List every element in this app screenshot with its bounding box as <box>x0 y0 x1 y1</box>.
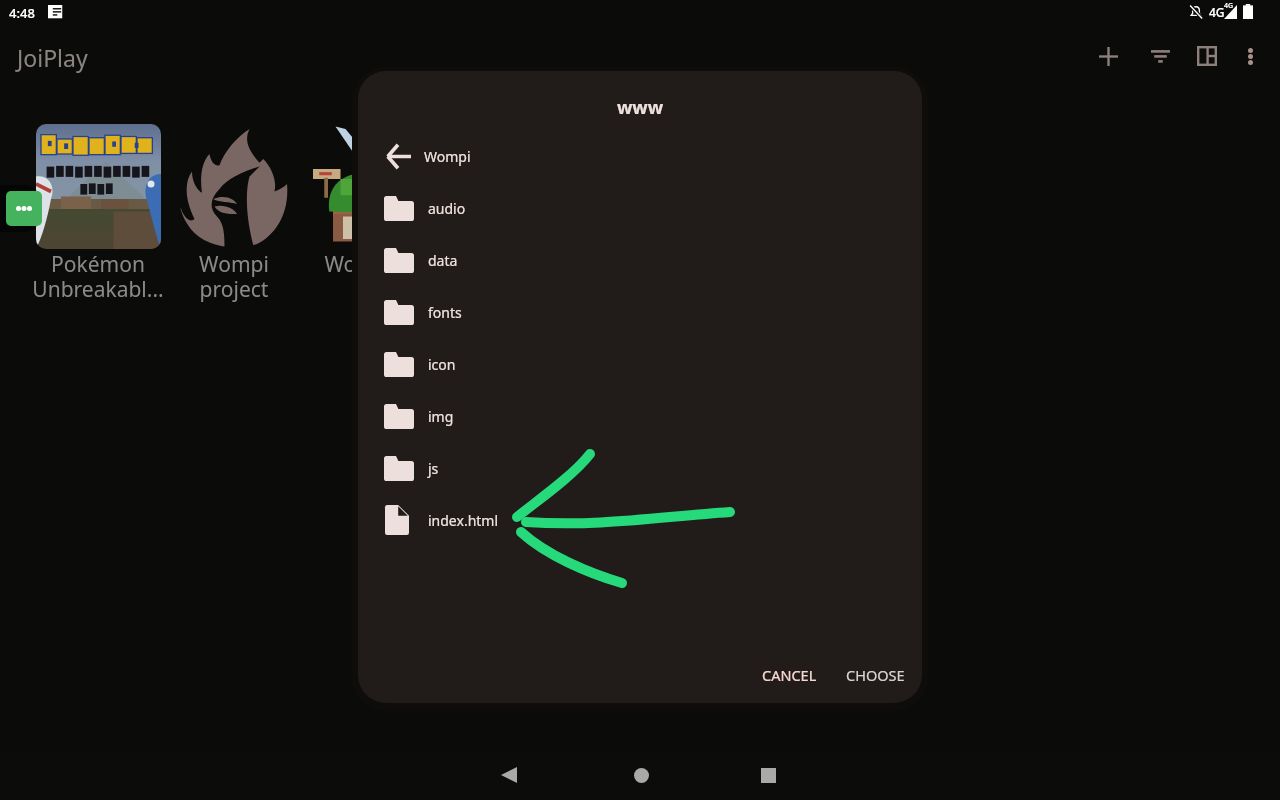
button[interactable]: Wolf RPG <box>298 124 442 279</box>
button[interactable]: More <box>6 191 42 226</box>
staticText: js <box>428 459 439 478</box>
button[interactable]: Pokémon Unbreakabl... <box>26 124 170 303</box>
staticText: 4G <box>1209 4 1225 20</box>
button[interactable]: index.html <box>358 494 922 546</box>
button[interactable]: fonts <box>358 286 922 338</box>
staticText: fonts <box>428 303 462 322</box>
button[interactable]: Home <box>617 751 665 799</box>
button[interactable]: Recent apps <box>744 751 792 799</box>
button[interactable]: data <box>358 234 922 286</box>
staticText: index.html <box>428 511 499 530</box>
button[interactable]: Filter <box>1138 34 1182 78</box>
staticText: Wompi <box>424 147 471 166</box>
button[interactable]: audio <box>358 182 922 234</box>
staticText: JoiPlay <box>17 42 88 73</box>
staticText: 4:48 <box>9 4 35 22</box>
button[interactable]: CHOOSE <box>836 656 915 694</box>
button[interactable]: Add <box>1086 34 1130 78</box>
staticText: icon <box>428 355 456 374</box>
staticText: Wompi project <box>162 250 306 303</box>
button[interactable]: img <box>358 390 922 442</box>
button[interactable]: Layout <box>1185 34 1229 78</box>
button[interactable]: Wompi project <box>162 124 306 303</box>
staticText: img <box>428 407 454 426</box>
staticText: CANCEL <box>762 665 817 685</box>
button[interactable]: Back <box>487 751 535 799</box>
staticText: Wolf RPG <box>298 250 442 279</box>
button[interactable]: More options <box>1228 34 1272 78</box>
button[interactable]: icon <box>358 338 922 390</box>
button[interactable]: Wompi <box>358 130 922 182</box>
staticText: Pokémon Unbreakabl... <box>26 250 170 303</box>
button[interactable]: CANCEL <box>752 656 827 694</box>
staticText: www <box>358 95 922 120</box>
staticText: audio <box>428 199 466 218</box>
staticText: CHOOSE <box>846 665 905 685</box>
staticText: data <box>428 251 458 270</box>
staticText: 4G <box>1224 1 1234 11</box>
button[interactable]: js <box>358 442 922 494</box>
